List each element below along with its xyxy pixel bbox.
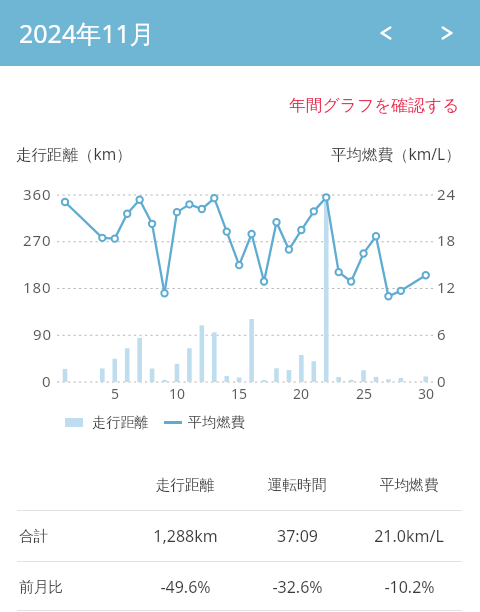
staticText: 平均燃費（km/L） bbox=[331, 143, 461, 164]
staticText: -49.6% bbox=[160, 576, 211, 598]
staticText: 18 bbox=[437, 230, 456, 250]
staticText: 0 bbox=[42, 371, 52, 391]
staticText: 1,288km bbox=[153, 525, 218, 547]
staticText: 合計 bbox=[19, 527, 49, 546]
staticText: 走行距離 bbox=[155, 476, 215, 495]
staticText: 15 bbox=[231, 384, 248, 403]
staticText: 12 bbox=[437, 277, 456, 297]
staticText: 平均燃費 bbox=[188, 413, 245, 431]
staticText: 10 bbox=[169, 384, 186, 403]
staticText: 5 bbox=[111, 384, 120, 403]
staticText: 25 bbox=[356, 384, 373, 403]
staticText: 30 bbox=[418, 384, 435, 403]
staticText: 270 bbox=[23, 230, 52, 250]
button[interactable]: Previous month bbox=[363, 0, 408, 66]
button[interactable]: 年間グラフを確認する bbox=[289, 95, 480, 116]
staticText: 24 bbox=[437, 184, 456, 204]
staticText: 90 bbox=[33, 324, 52, 344]
staticText: 360 bbox=[23, 184, 52, 204]
staticText: 前月比 bbox=[19, 578, 64, 597]
staticText: 20 bbox=[293, 384, 310, 403]
staticText: 2024年11月 bbox=[19, 16, 155, 50]
staticText: 走行距離（km） bbox=[16, 143, 132, 164]
staticText: 37:09 bbox=[277, 525, 318, 547]
staticText: 平均燃費 bbox=[379, 476, 439, 495]
button[interactable]: Next month bbox=[424, 0, 469, 66]
staticText: -32.6% bbox=[272, 576, 323, 598]
staticText: 21.0km/L bbox=[374, 525, 444, 547]
staticText: 6 bbox=[437, 324, 447, 344]
staticText: -10.2% bbox=[384, 576, 435, 598]
staticText: 運転時間 bbox=[267, 476, 327, 495]
staticText: 走行距離 bbox=[92, 413, 149, 431]
staticText: 0 bbox=[437, 371, 447, 391]
staticText: 180 bbox=[23, 277, 52, 297]
